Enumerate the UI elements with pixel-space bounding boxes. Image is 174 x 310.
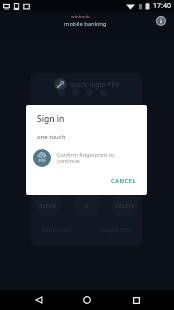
staticText: quick login PIN [70, 80, 120, 89]
staticText: one touch [37, 133, 66, 141]
staticText: CLEAR [39, 202, 57, 209]
staticText: Forgot PIN [100, 226, 131, 234]
button[interactable]: Back [29, 290, 49, 310]
button[interactable]: CLEAR [35, 192, 61, 218]
button[interactable]: Home [77, 290, 97, 310]
button[interactable]: Recents [126, 290, 146, 310]
staticText: DELETE [115, 202, 135, 209]
staticText: Sign in [37, 113, 65, 125]
staticText: CANCEL [111, 177, 137, 185]
button[interactable]: Info [153, 13, 169, 29]
button[interactable]: 0 [74, 192, 100, 218]
staticText: Other user [42, 226, 73, 234]
button[interactable]: CANCEL [101, 175, 147, 187]
staticText: 0 [85, 202, 89, 209]
staticText: Confirm fingerprint to continue [57, 151, 115, 165]
button[interactable]: DELETE [112, 192, 138, 218]
staticText: mobile banking [64, 20, 107, 28]
staticText: 17:40 [153, 1, 171, 11]
staticText: winbank [71, 14, 90, 20]
